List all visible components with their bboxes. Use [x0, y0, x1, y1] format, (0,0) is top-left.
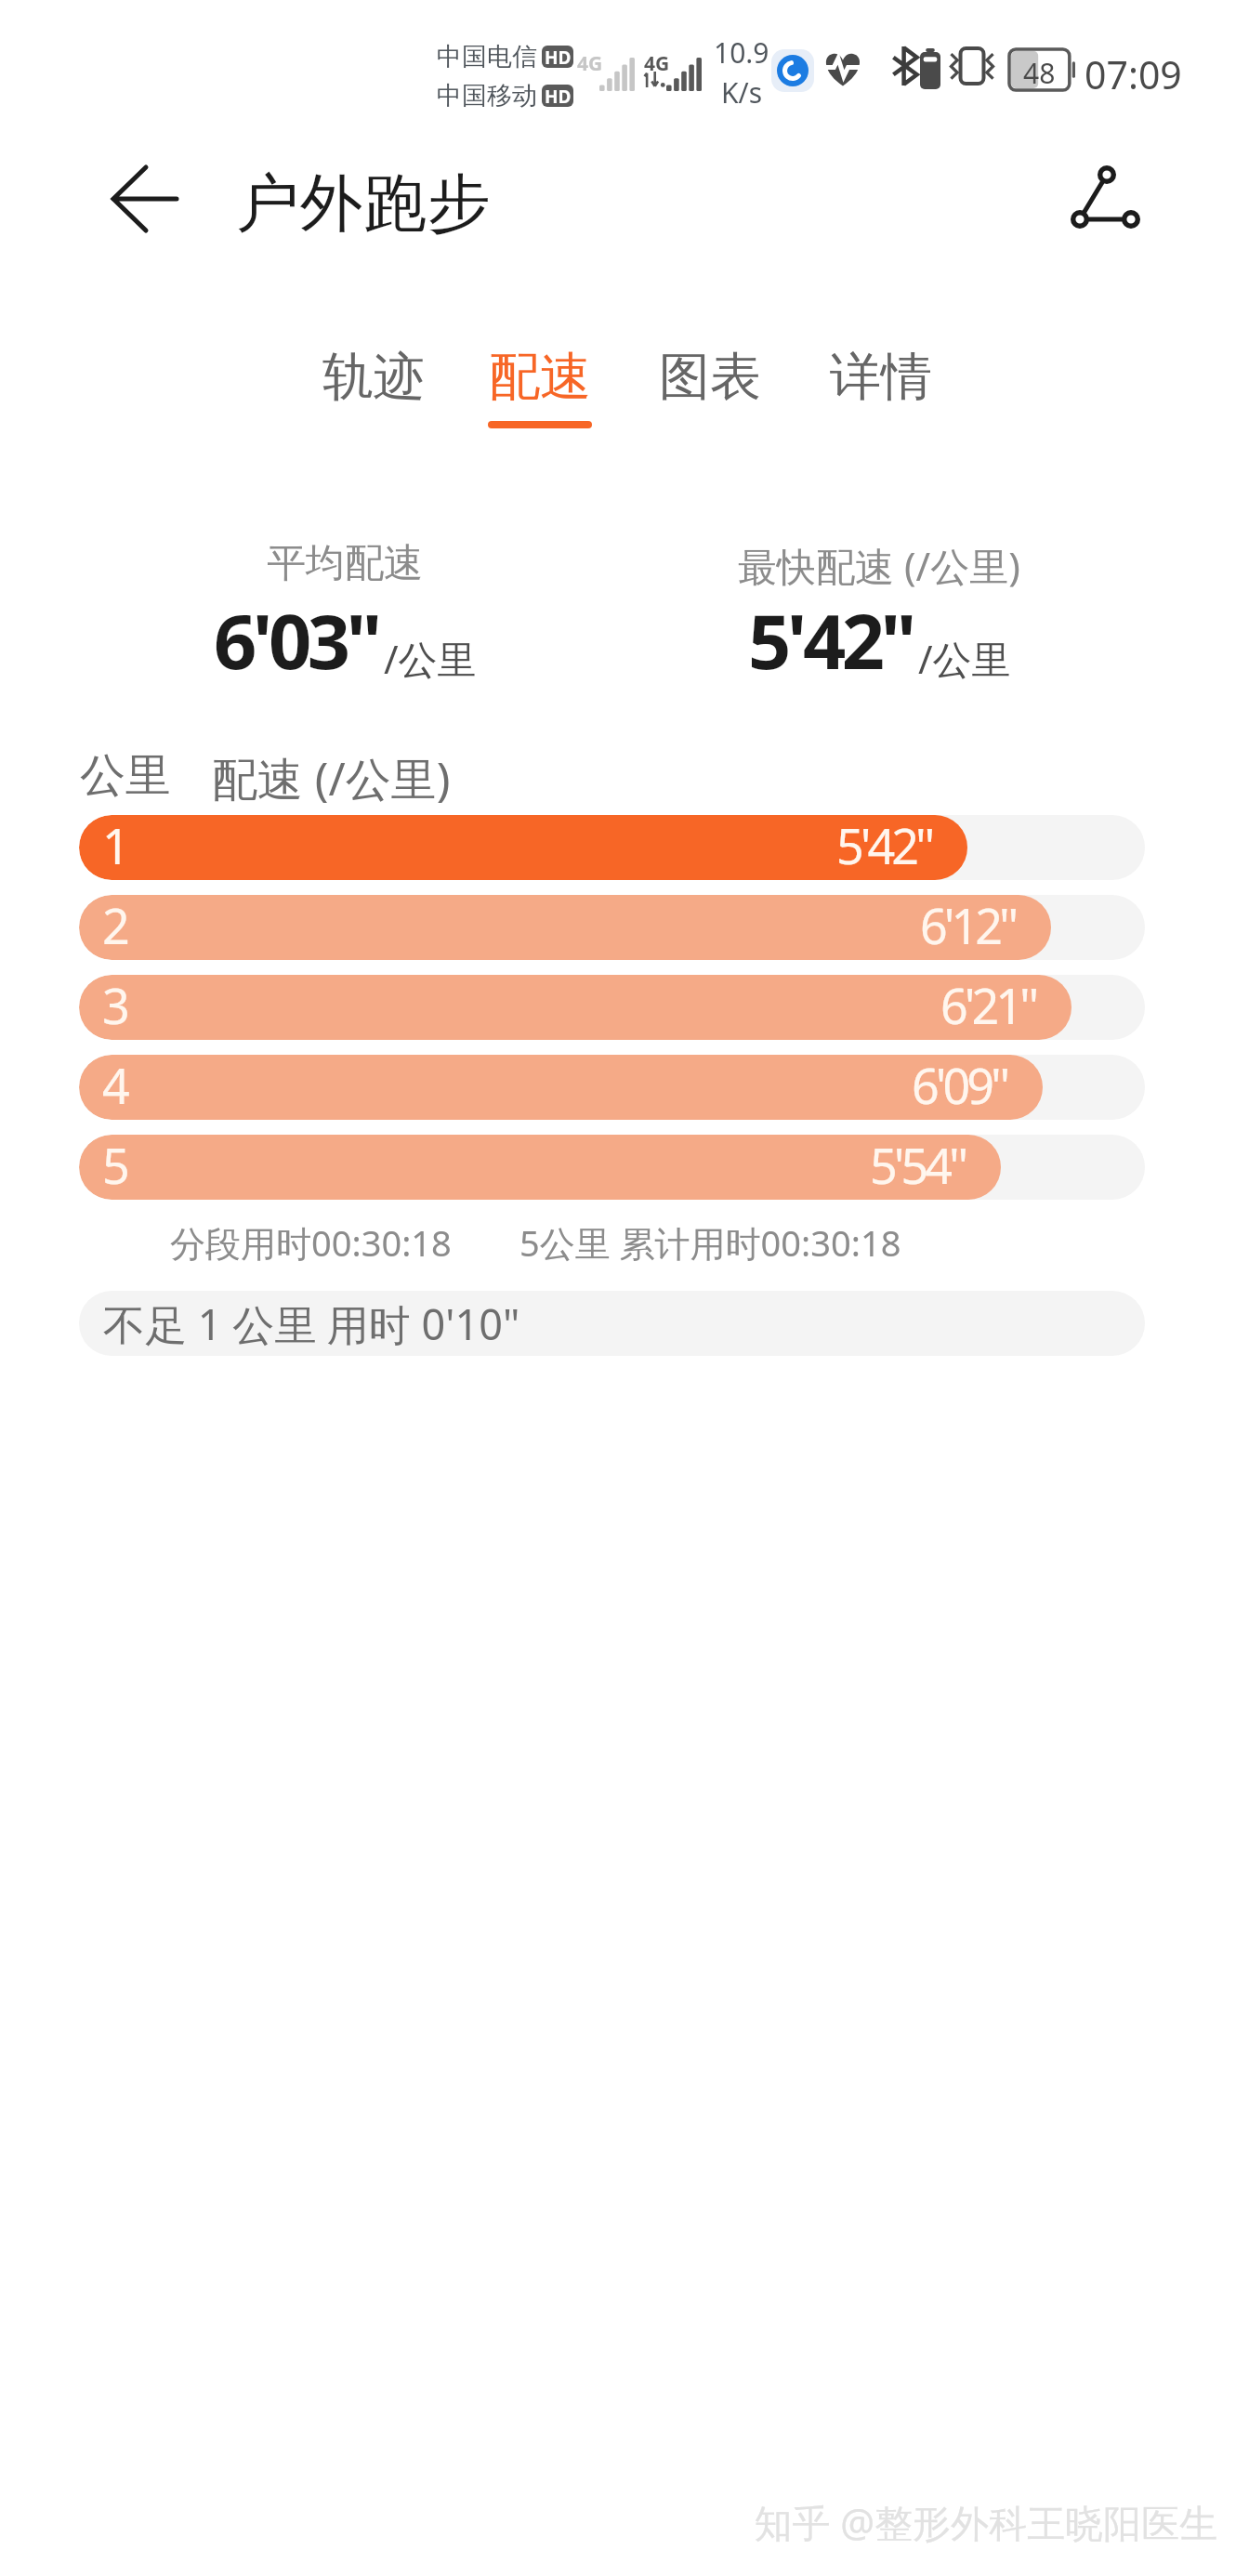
button[interactable]: 5 [79, 1135, 1145, 1200]
staticText: 5公里 累计用时00:30:18 [519, 1218, 901, 1267]
staticText: 不足 1 公里 用时 0'10" [103, 1295, 520, 1352]
button[interactable]: 1 [79, 815, 1145, 880]
staticText: 配速 (/公里) [212, 747, 451, 809]
staticText: 配速 [489, 345, 591, 409]
button[interactable]: 轨迹 [291, 337, 456, 441]
staticText: 1 [102, 815, 130, 877]
staticText: K/s [721, 73, 763, 112]
staticText: 4 [102, 1055, 130, 1117]
button[interactable]: 详情 [798, 337, 964, 441]
button[interactable]: Share [1050, 139, 1165, 255]
button[interactable]: 不足 1 公里 用时 0'10" [79, 1291, 1145, 1356]
button[interactable]: 配速 [457, 337, 623, 441]
staticText: HD [545, 85, 572, 107]
staticText: 5'42" [748, 588, 913, 690]
staticText: 6'12" [920, 895, 1016, 957]
staticText: 分段用时00:30:18 [170, 1218, 452, 1267]
staticText: 公里 [80, 747, 171, 805]
staticText: 户外跑步 [236, 164, 492, 244]
staticText: 48 [1023, 54, 1056, 92]
button[interactable]: 4 [79, 1055, 1145, 1120]
staticText: 4G [644, 50, 670, 77]
staticText: 平均配速 [267, 539, 423, 588]
staticText: 图表 [659, 345, 761, 409]
staticText: 最快配速 (/公里) [738, 539, 1020, 592]
button[interactable]: 图表 [627, 337, 793, 441]
button[interactable]: 3 [79, 975, 1145, 1040]
staticText: 6'21" [940, 975, 1036, 1037]
staticText: /公里 [384, 632, 477, 685]
button[interactable]: Back [90, 143, 202, 255]
button[interactable]: 2 [79, 895, 1145, 960]
staticText: 3 [102, 975, 130, 1037]
staticText: 轨迹 [322, 345, 425, 409]
staticText: /公里 [918, 632, 1011, 685]
staticText: 5 [102, 1135, 130, 1197]
staticText: 详情 [830, 345, 932, 409]
staticText: 知乎 @整形外科王晓阳医生 [754, 2496, 1217, 2548]
staticText: 6'09" [912, 1055, 1007, 1117]
staticText: 5'42" [836, 815, 932, 877]
staticText: 10.9 [714, 33, 769, 72]
staticText: 07:09 [1085, 48, 1182, 100]
staticText: 5'54" [870, 1135, 966, 1197]
staticText: 中国移动 [437, 80, 537, 112]
staticText: 4G [577, 50, 603, 77]
staticText: 中国电信 [437, 41, 537, 72]
staticText: 2 [102, 895, 130, 957]
staticText: 6'03" [214, 588, 378, 690]
staticText: HD [545, 46, 572, 68]
